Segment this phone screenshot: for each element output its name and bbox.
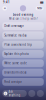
button[interactable]: Voice mode (37, 90, 44, 97)
staticText: ≡ (4, 7, 6, 10)
staticText: Write some code (4, 61, 27, 65)
button[interactable]: Dictate (28, 90, 35, 97)
staticText: Brainstorm ideas (4, 71, 26, 74)
staticText: Ask anything (9, 90, 21, 97)
button[interactable]: Plan a weekend trip (2, 41, 44, 49)
staticText: Explain this photo (4, 52, 29, 56)
staticText: Summarize my day (4, 34, 26, 37)
button[interactable]: + (2, 90, 27, 97)
staticText: Find a recipe (4, 80, 22, 84)
button[interactable]: Write some code (2, 59, 44, 67)
staticText: Plan a weekend trip (4, 43, 32, 46)
button[interactable]: Explain this photo (2, 50, 44, 58)
button[interactable]: Summarize my day (2, 31, 44, 39)
button[interactable]: Brainstorm ideas (2, 69, 44, 76)
staticText: ▮▮▮ (40, 1, 43, 4)
button[interactable]: New (36, 6, 44, 10)
staticText: New (37, 6, 42, 10)
button[interactable]: Draft a message (2, 22, 44, 30)
staticText: 9:41 (3, 0, 10, 4)
staticText: What can I help with? (8, 17, 37, 20)
staticText: Good evening (12, 13, 33, 16)
button[interactable]: Menu (2, 6, 7, 11)
button[interactable]: Find a recipe (2, 78, 44, 86)
staticText: + (4, 92, 6, 95)
staticText: Draft a message (4, 24, 24, 28)
